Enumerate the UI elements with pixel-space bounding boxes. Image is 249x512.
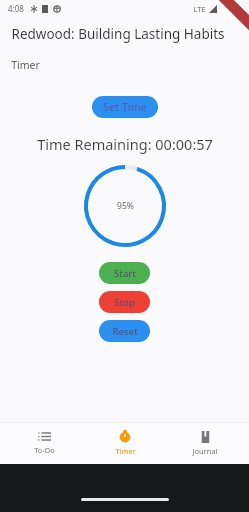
staticText: Journal (192, 446, 218, 456)
staticText: 95% (117, 200, 134, 212)
staticText: Timer (11, 58, 40, 72)
button[interactable]: Stop (99, 291, 150, 313)
button[interactable]: To-Do (8, 422, 80, 464)
staticText: Reset (112, 325, 138, 338)
button[interactable]: Timer (89, 422, 161, 464)
staticText: To-Do (34, 445, 55, 455)
staticText: Set Time (103, 100, 147, 114)
staticText: Time Remaining: 00:00:57 (37, 134, 213, 154)
button[interactable]: Set Time (92, 96, 158, 118)
button[interactable]: Journal (169, 422, 241, 464)
staticText: 4:08 (8, 3, 24, 14)
staticText: DEBUG (221, 6, 244, 29)
staticText: LTE (193, 4, 206, 14)
button[interactable]: Reset (99, 320, 150, 342)
staticText: Timer (115, 446, 136, 456)
staticText: Start (114, 267, 136, 280)
button[interactable]: Start (99, 262, 150, 284)
staticText: Redwood: Building Lasting Habits (11, 25, 225, 43)
staticText: Stop (114, 296, 135, 309)
